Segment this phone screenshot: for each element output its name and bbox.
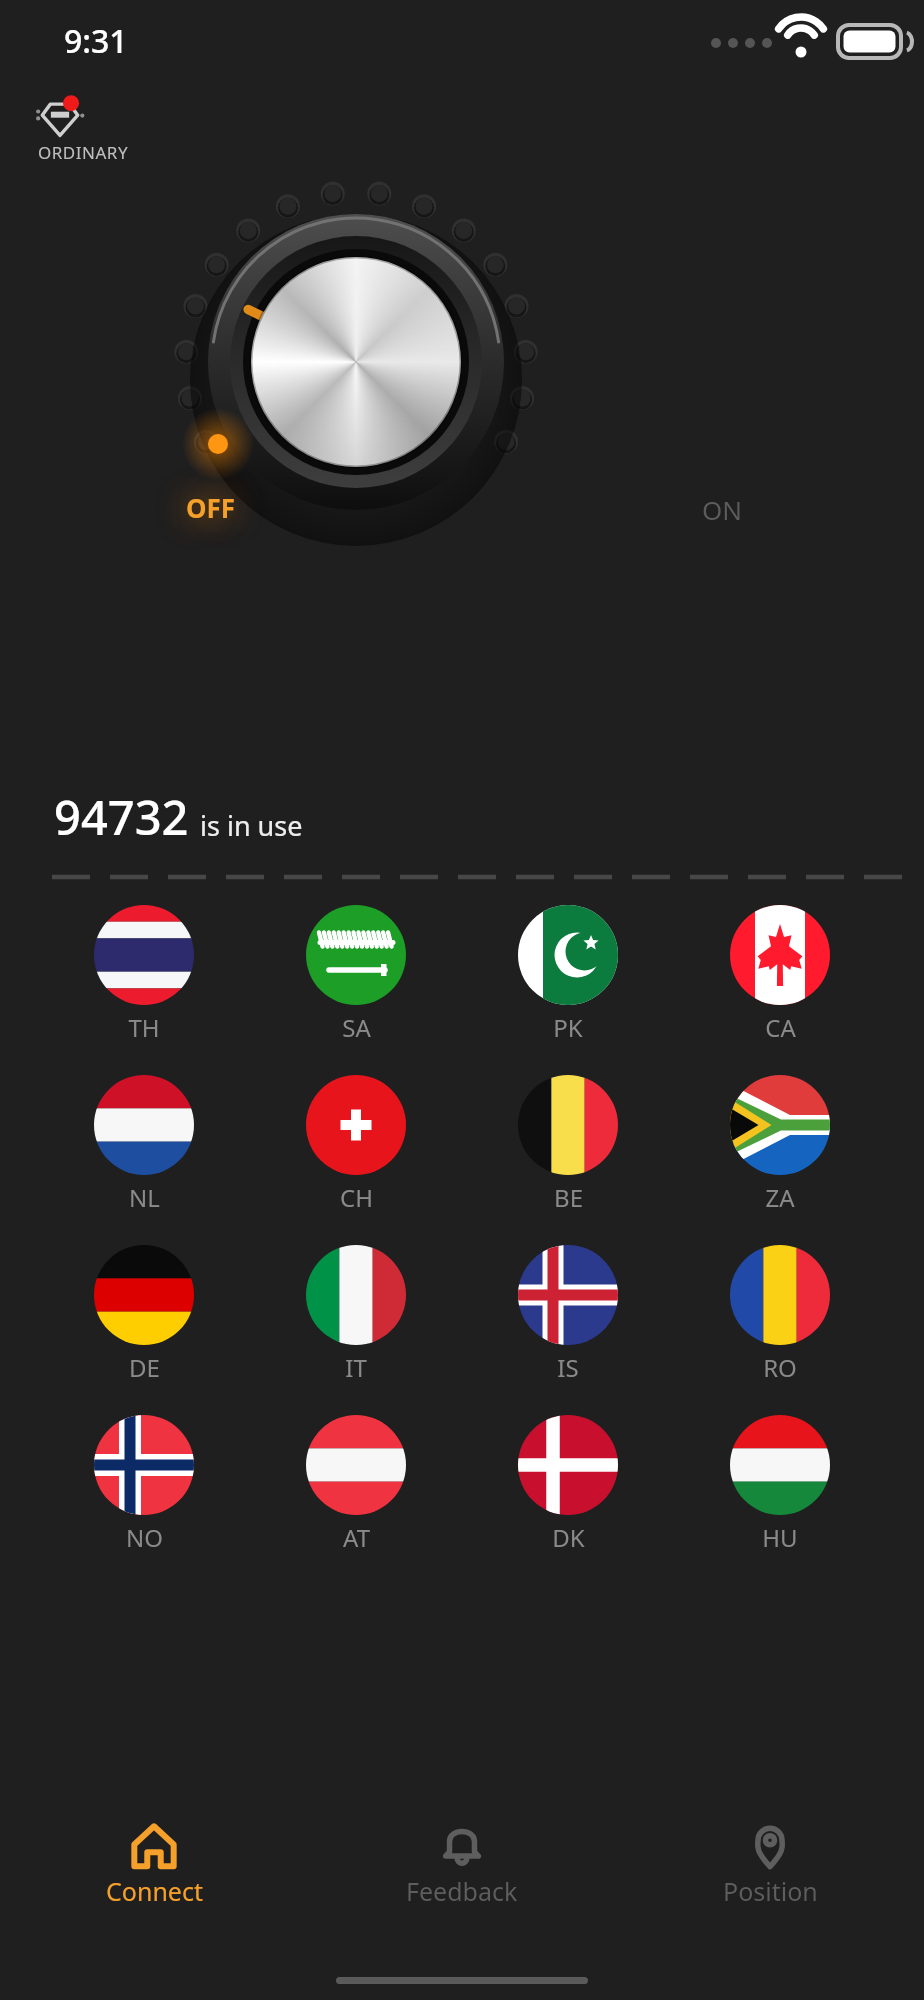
button[interactable]: PK: [462, 905, 674, 1044]
button[interactable]: HU: [674, 1415, 886, 1554]
staticText: HU: [762, 1521, 798, 1554]
staticText: is in use: [200, 807, 303, 844]
button[interactable]: Position: [616, 1822, 924, 1942]
staticText: TH: [128, 1011, 160, 1044]
button[interactable]: IT: [250, 1245, 462, 1384]
staticText: DE: [129, 1351, 160, 1384]
staticText: Position: [723, 1874, 818, 1908]
staticText: ZA: [765, 1181, 795, 1214]
staticText: IS: [557, 1351, 579, 1384]
button[interactable]: Ordinary membership: [36, 94, 129, 164]
button[interactable]: NL: [38, 1075, 250, 1214]
staticText: AT: [343, 1521, 370, 1554]
staticText: NL: [129, 1181, 160, 1214]
staticText: Connect: [106, 1874, 203, 1908]
staticText: PK: [553, 1011, 583, 1044]
button[interactable]: ZA: [674, 1075, 886, 1214]
button[interactable]: SA: [250, 905, 462, 1044]
staticText: 94732: [54, 785, 189, 849]
staticText: SA: [342, 1011, 371, 1044]
staticText: OFF: [186, 490, 236, 525]
staticText: BE: [554, 1181, 583, 1214]
button[interactable]: OFF: [186, 490, 236, 525]
button[interactable]: DK: [462, 1415, 674, 1554]
button[interactable]: NO: [38, 1415, 250, 1554]
button[interactable]: Feedback: [308, 1822, 616, 1942]
staticText: ORDINARY: [38, 141, 129, 164]
staticText: DK: [552, 1521, 585, 1554]
staticText: ON: [702, 492, 743, 527]
button[interactable]: IS: [462, 1245, 674, 1384]
staticText: RO: [763, 1351, 797, 1384]
staticText: 9:31: [64, 19, 128, 63]
button[interactable]: TH: [38, 905, 250, 1044]
button[interactable]: BE: [462, 1075, 674, 1214]
button[interactable]: RO: [674, 1245, 886, 1384]
staticText: CA: [765, 1011, 796, 1044]
staticText: NO: [126, 1521, 163, 1554]
button[interactable]: CA: [674, 905, 886, 1044]
button[interactable]: DE: [38, 1245, 250, 1384]
staticText: IT: [345, 1351, 367, 1384]
staticText: Feedback: [406, 1874, 518, 1908]
staticText: CH: [340, 1181, 373, 1214]
button[interactable]: ON: [702, 492, 743, 527]
button[interactable]: AT: [250, 1415, 462, 1554]
button[interactable]: CH: [250, 1075, 462, 1214]
button[interactable]: Connect: [0, 1822, 308, 1942]
